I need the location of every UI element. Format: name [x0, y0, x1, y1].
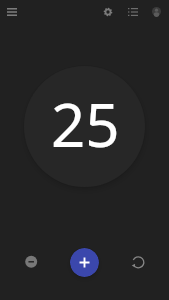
- button[interactable]: Reset: [120, 244, 156, 280]
- button[interactable]: Counter list: [121, 0, 144, 23]
- button[interactable]: Increment: [70, 248, 99, 277]
- button[interactable]: Decrement: [13, 244, 49, 280]
- button[interactable]: 25: [24, 66, 145, 187]
- staticText: 25: [51, 83, 120, 165]
- button[interactable]: Menu: [0, 0, 23, 23]
- button[interactable]: Account: [145, 0, 168, 23]
- button[interactable]: Settings: [96, 0, 119, 23]
